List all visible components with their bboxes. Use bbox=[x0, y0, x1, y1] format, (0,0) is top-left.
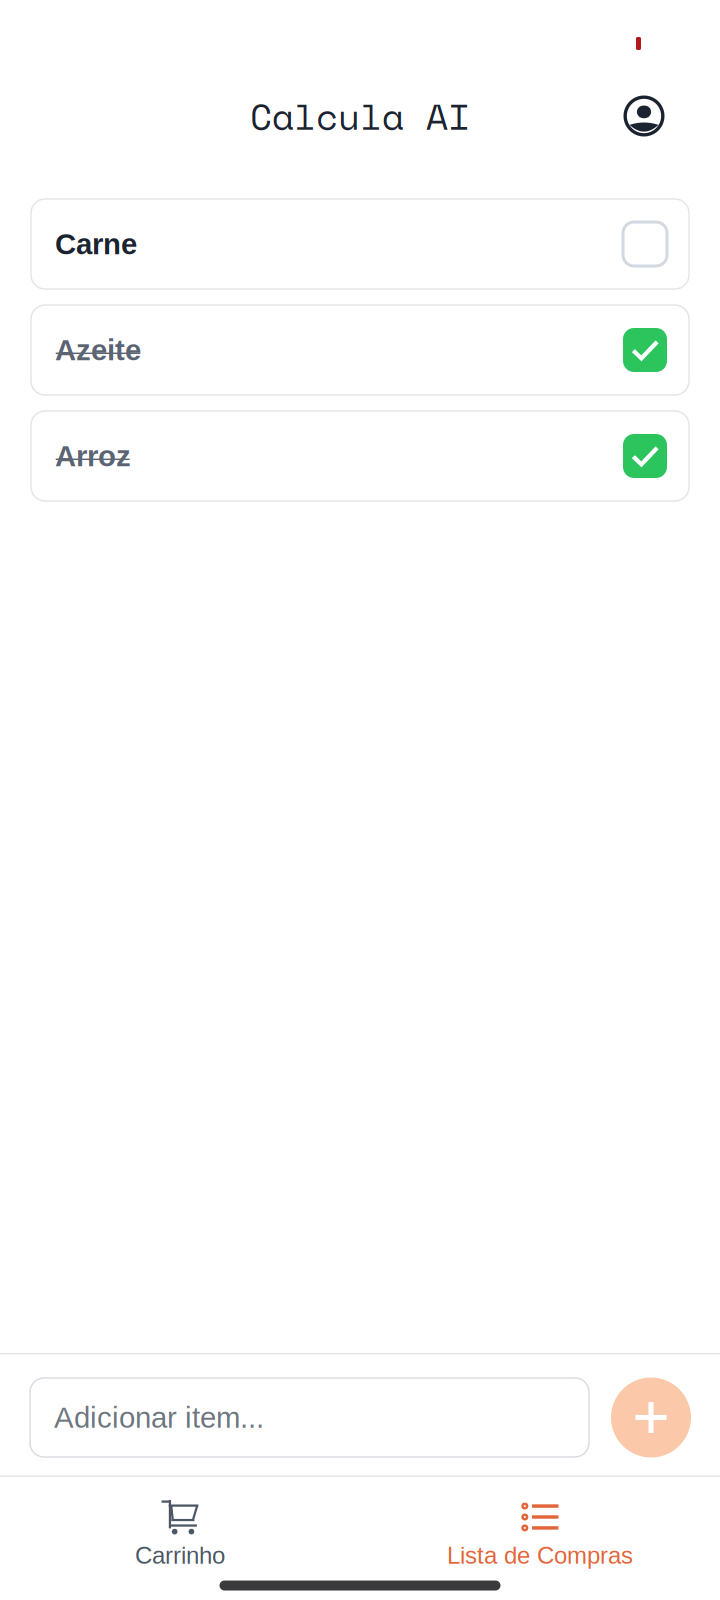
staticText: Arroz bbox=[55, 440, 131, 472]
staticText: Carrinho bbox=[135, 1542, 225, 1569]
button[interactable]: Arroz bbox=[31, 411, 689, 501]
staticText: Lista de Compras bbox=[447, 1542, 633, 1569]
button[interactable]: Carne bbox=[31, 199, 689, 289]
button[interactable]: Adicionar item bbox=[611, 1377, 691, 1457]
button[interactable]: Adicionar item... bbox=[30, 1378, 589, 1457]
button[interactable]: Conta bbox=[614, 86, 674, 146]
staticText: Adicionar item... bbox=[54, 1401, 264, 1434]
button[interactable]: Carrinho bbox=[0, 1477, 360, 1571]
button[interactable]: Lista de Compras bbox=[360, 1477, 720, 1571]
staticText: Carne bbox=[55, 228, 137, 260]
staticText: Azeite bbox=[55, 334, 141, 366]
staticText: Calcula AI bbox=[250, 89, 470, 143]
button[interactable]: Azeite bbox=[31, 305, 689, 395]
